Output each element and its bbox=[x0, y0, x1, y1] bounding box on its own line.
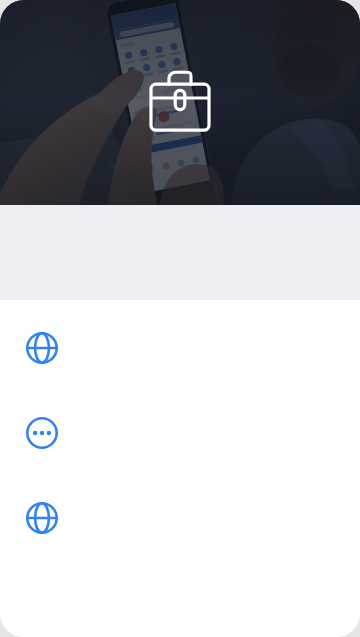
button[interactable]: Business banner bbox=[0, 0, 360, 205]
button[interactable]: More options bbox=[0, 417, 360, 449]
button[interactable]: Website bbox=[0, 502, 360, 534]
button[interactable]: Website bbox=[0, 332, 360, 364]
